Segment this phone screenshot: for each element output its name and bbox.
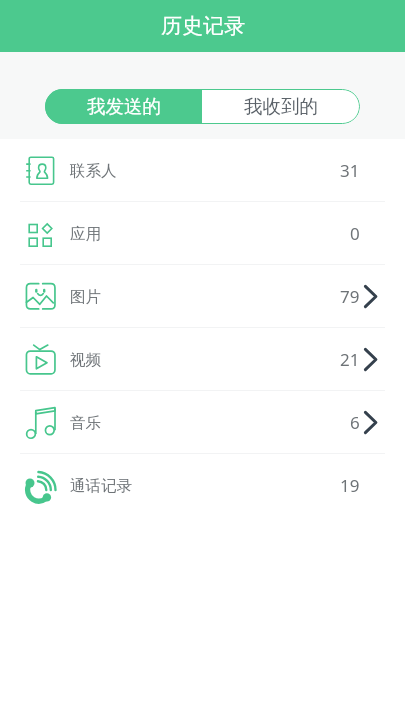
staticText: 视频 <box>70 350 101 370</box>
staticText: 79 <box>340 285 360 308</box>
staticText: 19 <box>340 474 360 497</box>
staticText: 联系人 <box>70 161 117 181</box>
staticText: 21 <box>340 348 360 371</box>
button[interactable]: 图片 <box>0 265 405 328</box>
staticText: 图片 <box>70 287 101 307</box>
staticText: 我收到的 <box>244 95 318 118</box>
staticText: 历史记录 <box>161 13 245 39</box>
staticText: 6 <box>350 411 360 434</box>
button[interactable]: 音乐 <box>0 391 405 454</box>
staticText: 31 <box>340 159 360 182</box>
staticText: 音乐 <box>70 413 101 433</box>
button[interactable]: 联系人 <box>0 139 405 202</box>
button[interactable]: 视频 <box>0 328 405 391</box>
staticText: 我发送的 <box>87 95 161 118</box>
button[interactable]: 我发送的 <box>45 89 202 124</box>
button[interactable]: 我收到的 <box>202 89 360 124</box>
button[interactable]: 应用 <box>0 202 405 265</box>
staticText: 通话记录 <box>70 476 132 496</box>
staticText: 应用 <box>70 224 101 244</box>
button[interactable]: 通话记录 <box>0 454 405 517</box>
staticText: 0 <box>350 222 360 245</box>
